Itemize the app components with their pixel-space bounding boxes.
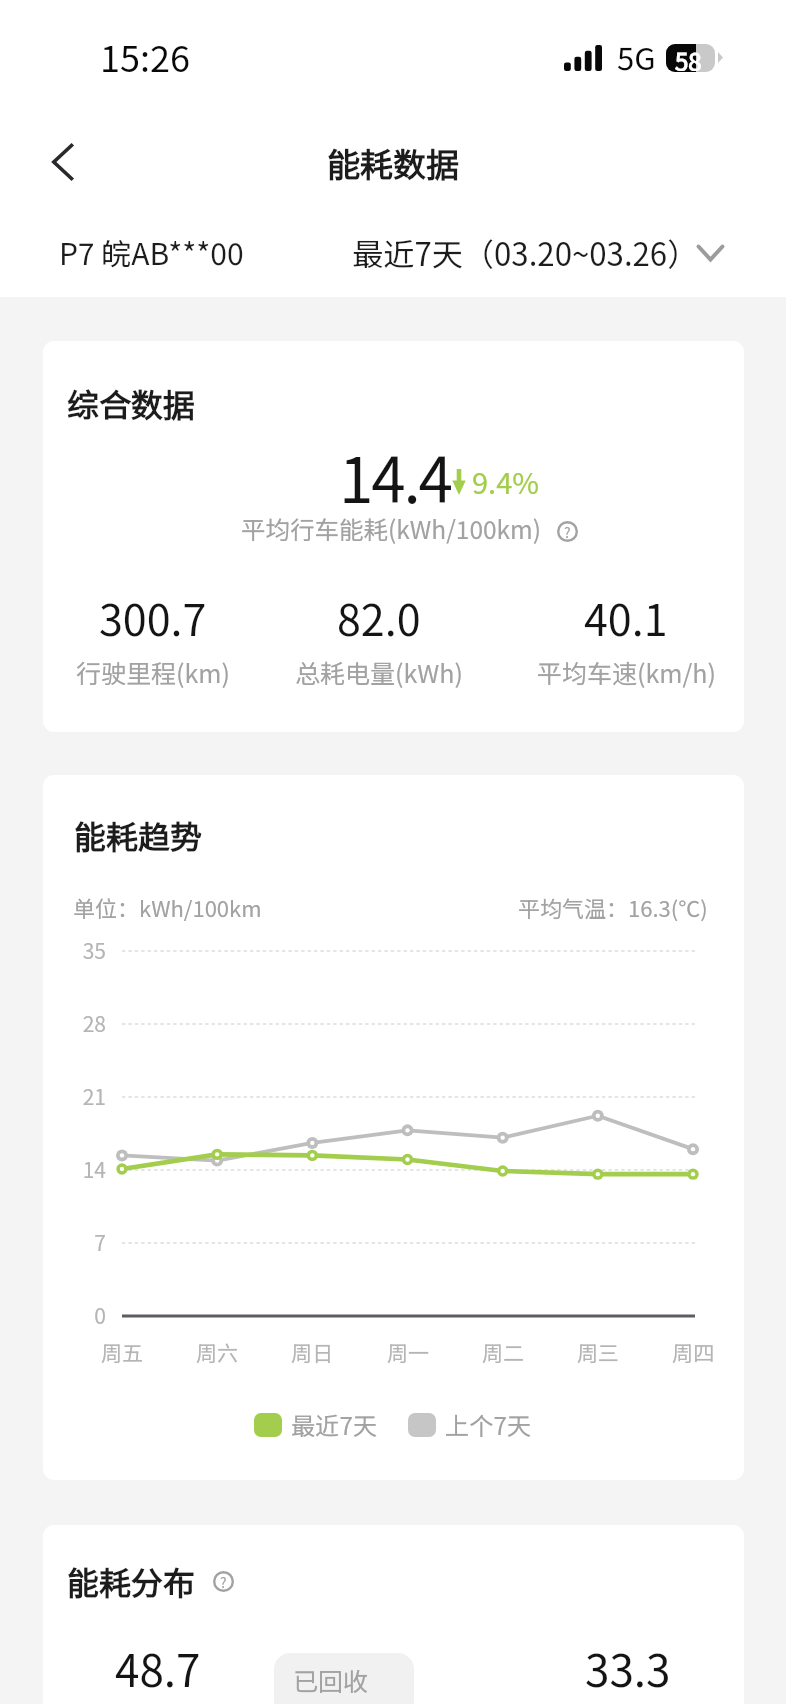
staticText: 能耗分布 — [67, 1558, 196, 1604]
staticText: 15:26 — [100, 30, 190, 82]
staticText: 9.4% — [472, 460, 539, 502]
staticText: 平均气温：16.3(℃) — [518, 891, 708, 923]
staticText: 周六 — [167, 1337, 267, 1367]
staticText: 单位：kWh/100km — [73, 891, 262, 923]
staticText: 58 — [675, 44, 702, 71]
staticText: 上个7天 — [445, 1407, 531, 1442]
staticText: 7 — [43, 1227, 106, 1257]
staticText: 21 — [43, 1081, 106, 1111]
staticText: 周四 — [643, 1337, 743, 1367]
staticText: P7 皖AB***00 — [59, 230, 244, 273]
staticText: 300.7 — [99, 586, 207, 648]
staticText: 已回收 — [293, 1662, 369, 1698]
button[interactable]: 最近7天（03.20~03.26） — [352, 230, 726, 275]
staticText: 平均车速(km/h) — [537, 654, 716, 690]
staticText: 能耗数据 — [327, 139, 459, 187]
staticText: 周一 — [358, 1337, 458, 1367]
staticText: 平均行车能耗(kWh/100km) — [241, 511, 542, 546]
staticText: 能耗趋势 — [74, 812, 203, 858]
staticText: 5G — [617, 34, 656, 79]
staticText: 最近7天 — [291, 1407, 377, 1442]
staticText: 周三 — [548, 1337, 648, 1367]
staticText: 82.0 — [337, 586, 421, 648]
staticText: 周五 — [72, 1337, 172, 1367]
staticText: 行驶里程(km) — [76, 654, 230, 690]
staticText: 综合数据 — [67, 380, 196, 426]
staticText: 周日 — [262, 1337, 362, 1367]
staticText: 14.4 — [339, 431, 451, 521]
staticText: 48.7 — [115, 1636, 201, 1700]
staticText: 40.1 — [584, 586, 668, 648]
staticText: 33.3 — [585, 1636, 671, 1700]
staticText: 总耗电量(kWh) — [295, 654, 463, 690]
staticText: ? — [564, 522, 571, 542]
staticText: 28 — [43, 1008, 106, 1038]
staticText: 最近7天（03.20~03.26） — [352, 230, 699, 275]
staticText: 周二 — [453, 1337, 553, 1367]
staticText: 0 — [43, 1300, 106, 1330]
staticText: 35 — [43, 935, 106, 965]
staticText: ? — [220, 1572, 227, 1592]
button[interactable]: Back — [30, 130, 94, 194]
staticText: 14 — [43, 1154, 106, 1184]
